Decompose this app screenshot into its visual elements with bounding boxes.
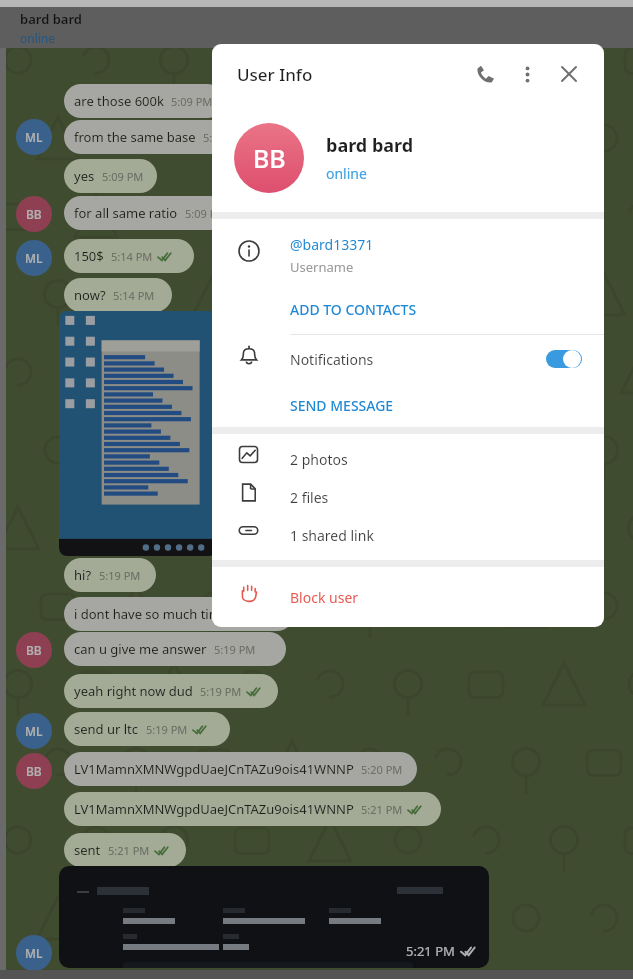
staticText: 5:19 PM <box>99 568 141 583</box>
staticText: from the same base <box>74 128 196 146</box>
staticText: 5:21 PM <box>361 802 403 817</box>
staticText: are those 600k <box>74 92 164 110</box>
staticText: @bard13371 <box>290 235 374 254</box>
staticText: 5:09 PM <box>185 206 227 221</box>
staticText: yes <box>74 167 95 185</box>
button[interactable]: yes <box>64 159 157 193</box>
staticText: ADD TO CONTACTS <box>290 300 417 319</box>
button[interactable]: Notifications <box>212 335 604 383</box>
staticText: sent <box>74 841 101 859</box>
staticText: 2 files <box>290 488 329 507</box>
button[interactable]: yeah right now dud <box>64 674 278 708</box>
staticText: 5:14 PM <box>111 249 153 264</box>
staticText: 1 shared link <box>290 526 374 545</box>
button[interactable]: now? <box>64 278 172 312</box>
staticText: SEND MESSAGE <box>290 396 394 415</box>
staticText: 5:21 PM <box>406 942 455 960</box>
button[interactable]: More options <box>506 53 548 95</box>
button[interactable]: LV1MamnXMNWgpdUaeJCnTAZu9ois41WNNP <box>64 752 417 786</box>
button[interactable]: are those 600k <box>64 84 224 118</box>
button[interactable]: ADD TO CONTACTS <box>212 291 604 327</box>
staticText: for all same ratio <box>74 204 178 222</box>
staticText: online <box>326 164 367 183</box>
button[interactable]: from the same base <box>64 120 264 154</box>
button[interactable]: 1 shared link <box>212 516 604 554</box>
staticText: ML <box>25 129 43 145</box>
button[interactable]: 2 photos <box>212 440 604 478</box>
staticText: BB <box>26 206 42 222</box>
button[interactable]: @bard13371 <box>212 219 604 291</box>
staticText: 5:19 PM <box>146 722 188 737</box>
staticText: BB <box>26 763 42 779</box>
button[interactable]: 150$ <box>64 239 194 273</box>
staticText: Block user <box>290 588 359 607</box>
button[interactable]: hi? <box>64 558 156 592</box>
staticText: i dont have so much tim <box>74 605 221 623</box>
staticText: hi? <box>74 566 92 584</box>
staticText: 5:09 PM <box>102 169 144 184</box>
staticText: 5:21 PM <box>108 843 150 858</box>
staticText: 2 photos <box>290 450 348 469</box>
button[interactable]: BB <box>212 104 604 212</box>
staticText: 5:20 PM <box>361 762 403 777</box>
button[interactable]: 2 files <box>212 478 604 516</box>
staticText: bard bard <box>20 10 82 28</box>
staticText: ML <box>25 250 43 266</box>
staticText: Notifications <box>290 350 546 369</box>
staticText: 5:19 PM <box>200 684 242 699</box>
button[interactable]: sent <box>64 833 186 867</box>
staticText: yeah right now dud <box>74 682 193 700</box>
button[interactable]: 5:21 PM <box>59 866 489 968</box>
staticText: Username <box>290 258 354 276</box>
staticText: can u give me answer <box>74 640 207 658</box>
staticText: 5:14 PM <box>113 288 155 303</box>
button[interactable]: Close <box>548 53 590 95</box>
staticText: BB <box>26 642 42 658</box>
button[interactable] <box>59 311 217 556</box>
staticText: 5:19 PM <box>214 642 256 657</box>
staticText: bard bard <box>326 133 414 158</box>
button[interactable]: i dont have so much tim <box>64 597 294 631</box>
staticText: 150$ <box>74 247 104 265</box>
staticText: User Info <box>237 63 313 86</box>
button[interactable]: send ur ltc <box>64 712 230 746</box>
button[interactable]: SEND MESSAGE <box>212 383 604 427</box>
staticText: now? <box>74 286 106 304</box>
button[interactable]: LV1MamnXMNWgpdUaeJCnTAZu9ois41WNNP <box>64 792 441 826</box>
staticText: LV1MamnXMNWgpdUaeJCnTAZu9ois41WNNP <box>74 760 354 778</box>
staticText: 5:09 PM <box>171 94 213 109</box>
staticText: online <box>20 30 56 46</box>
staticText: 5:09 PM <box>203 130 245 145</box>
button[interactable]: for all same ratio <box>64 196 239 230</box>
button[interactable]: Block user <box>212 567 604 627</box>
staticText: BB <box>253 141 286 175</box>
staticText: ML <box>25 723 43 739</box>
staticText: ML <box>25 945 43 961</box>
button[interactable]: can u give me answer <box>64 632 286 666</box>
button[interactable]: Call <box>464 53 506 95</box>
staticText: send ur ltc <box>74 720 139 738</box>
staticText: LV1MamnXMNWgpdUaeJCnTAZu9ois41WNNP <box>74 800 354 818</box>
